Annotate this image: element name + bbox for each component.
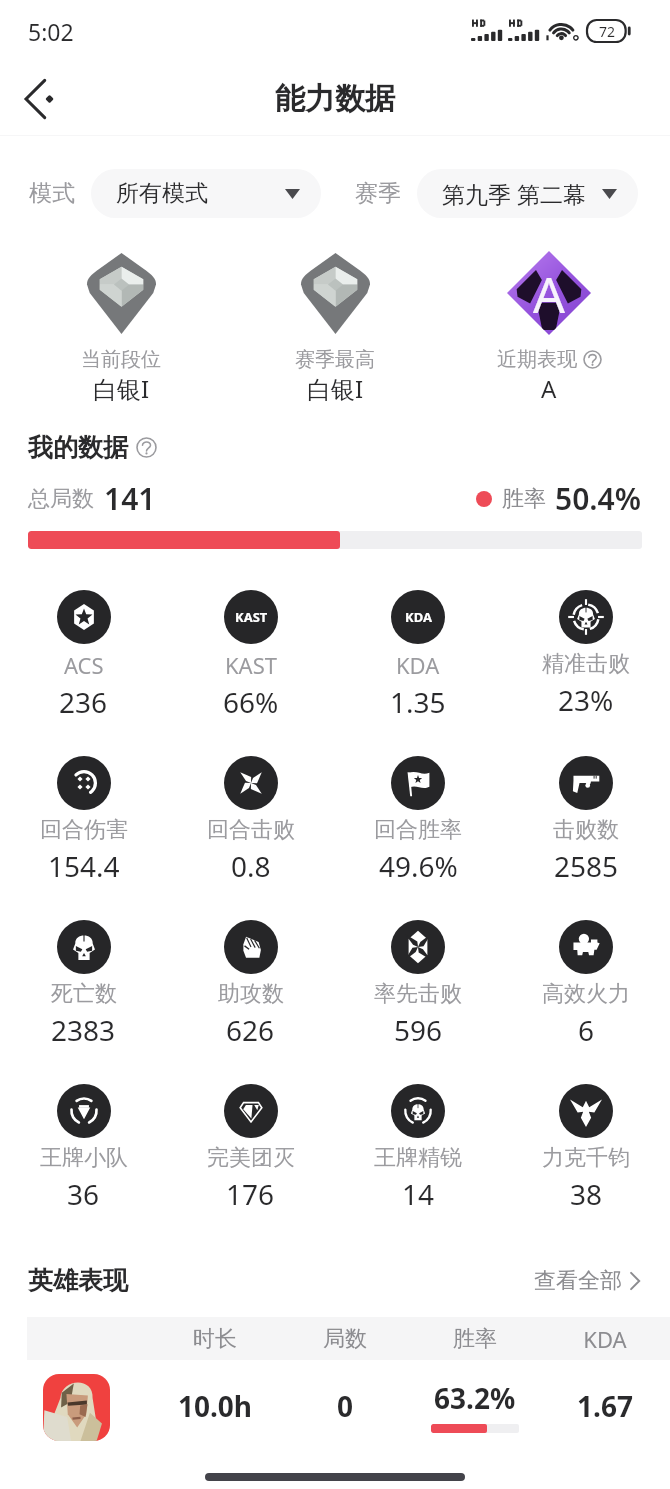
staticText: KDA xyxy=(540,1324,670,1354)
staticText: 击败数 xyxy=(553,816,619,844)
staticText: 模式 xyxy=(29,179,75,208)
staticText: KDA xyxy=(396,650,440,680)
button[interactable]: 王牌小队 xyxy=(0,1084,167,1213)
button[interactable]: 王牌精锐 xyxy=(334,1084,502,1213)
staticText: 王牌小队 xyxy=(40,1144,128,1172)
staticText: KAST xyxy=(235,608,268,626)
staticText: 胜率 xyxy=(502,485,546,513)
staticText: 50.4% xyxy=(555,478,642,519)
staticText: KAST xyxy=(225,650,277,680)
staticText: 0.8 xyxy=(231,847,271,885)
button[interactable]: ACS xyxy=(0,590,167,721)
button[interactable]: 率先击败 xyxy=(334,920,502,1049)
staticText: 596 xyxy=(394,1011,443,1049)
button[interactable]: 赛季最高 xyxy=(228,251,442,405)
staticText: 回合伤害 xyxy=(40,816,128,844)
button[interactable]: 查看全部 xyxy=(534,1267,642,1295)
button[interactable]: 精准击败 xyxy=(502,590,670,719)
staticText: 6 xyxy=(578,1011,595,1049)
staticText: 赛季最高 xyxy=(295,347,375,372)
staticText: 完美团灭 xyxy=(207,1144,295,1172)
staticText: 力克千钧 xyxy=(542,1144,630,1172)
staticText: 局数 xyxy=(280,1325,410,1353)
staticText: 2383 xyxy=(51,1011,116,1049)
staticText: 38 xyxy=(570,1175,603,1213)
staticText: 率先击败 xyxy=(374,980,462,1008)
staticText: 154.4 xyxy=(48,847,120,885)
staticText: 高效火力 xyxy=(542,980,630,1008)
staticText: A xyxy=(541,372,557,405)
button[interactable]: KAST xyxy=(167,590,334,721)
staticText: 当前段位 xyxy=(81,347,161,372)
staticText: 能力数据 xyxy=(275,80,395,118)
button[interactable]: Back xyxy=(10,71,66,127)
staticText: 141 xyxy=(104,478,156,519)
staticText: 63.2% xyxy=(434,1379,516,1417)
staticText: 0 xyxy=(280,1387,410,1425)
staticText: 5:02 xyxy=(28,16,74,47)
staticText: 66% xyxy=(223,683,279,721)
staticText: 2585 xyxy=(554,847,619,885)
staticText: 我的数据 xyxy=(28,432,128,463)
button[interactable]: 高效火力 xyxy=(502,920,670,1049)
staticText: 626 xyxy=(226,1011,275,1049)
staticText: 36 xyxy=(67,1175,100,1213)
button[interactable]: 第九季 第二幕 xyxy=(417,169,638,218)
staticText: 14 xyxy=(402,1175,435,1213)
staticText: 所有模式 xyxy=(116,179,208,208)
staticText: 回合胜率 xyxy=(374,816,462,844)
staticText: 236 xyxy=(59,683,108,721)
staticText: 英雄表现 xyxy=(28,1265,128,1296)
staticText: 近期表现 xyxy=(497,347,577,372)
staticText: 176 xyxy=(226,1175,275,1213)
staticText: 第九季 第二幕 xyxy=(442,178,586,209)
staticText: 10.0h xyxy=(150,1387,280,1425)
staticText: 1.35 xyxy=(390,683,446,721)
staticText: ACS xyxy=(64,650,104,680)
staticText: KDA xyxy=(405,608,432,626)
staticText: 助攻数 xyxy=(218,980,284,1008)
staticText: 精准击败 xyxy=(542,650,630,678)
staticText: A xyxy=(533,260,565,328)
staticText: 23% xyxy=(558,681,614,719)
staticText: 49.6% xyxy=(379,847,458,885)
button[interactable]: 所有模式 xyxy=(91,169,321,218)
button[interactable]: 当前段位 xyxy=(14,251,228,405)
staticText: 总局数 xyxy=(28,485,94,513)
button[interactable]: 回合击败 xyxy=(167,756,334,885)
staticText: 赛季 xyxy=(355,179,401,208)
button[interactable]: 回合伤害 xyxy=(0,756,167,885)
button[interactable]: 回合胜率 xyxy=(334,756,502,885)
staticText: 72 xyxy=(599,22,616,41)
button[interactable]: 力克千钧 xyxy=(502,1084,670,1213)
staticText: 王牌精锐 xyxy=(374,1144,462,1172)
staticText: 查看全部 xyxy=(534,1267,622,1295)
button[interactable]: KDA xyxy=(334,590,502,721)
staticText: 死亡数 xyxy=(51,980,117,1008)
button[interactable]: 完美团灭 xyxy=(167,1084,334,1213)
staticText: 白银I xyxy=(93,372,150,405)
button[interactable]: 死亡数 xyxy=(0,920,167,1049)
button[interactable]: 10.0h xyxy=(0,1360,670,1452)
button[interactable]: A xyxy=(442,251,656,405)
button[interactable]: 助攻数 xyxy=(167,920,334,1049)
staticText: 1.67 xyxy=(540,1387,670,1425)
staticText: 胜率 xyxy=(410,1325,540,1353)
staticText: 时长 xyxy=(150,1325,280,1353)
staticText: 白银I xyxy=(307,372,364,405)
button[interactable]: 击败数 xyxy=(502,756,670,885)
staticText: 回合击败 xyxy=(207,816,295,844)
